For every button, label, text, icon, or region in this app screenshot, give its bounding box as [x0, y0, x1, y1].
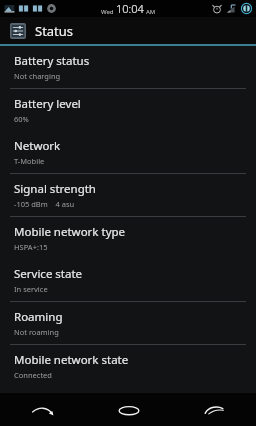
staticText: HSPA+:15 [14, 242, 48, 252]
staticText: T-Mobile [14, 156, 45, 166]
staticText: Roaming [14, 309, 63, 325]
staticText: Battery level [14, 96, 81, 112]
staticText: Network [14, 138, 61, 154]
button[interactable]: Battery status [0, 46, 256, 88]
staticText: Status [35, 22, 74, 40]
staticText: Signal strength [14, 181, 96, 197]
button[interactable]: Recent apps [171, 393, 256, 426]
staticText: Wed [101, 8, 114, 16]
other: Battery 60 percent [241, 3, 252, 14]
staticText: -105 dBm 4 asu [14, 199, 75, 209]
staticText: Mobile network state [14, 352, 129, 368]
button[interactable]: Roaming [0, 302, 256, 344]
button[interactable]: Signal strength [0, 174, 256, 216]
button[interactable]: Back [0, 393, 86, 426]
staticText: Not charging [14, 71, 61, 81]
button[interactable]: Mobile network type [0, 217, 256, 259]
staticText: 10:04 [116, 1, 144, 16]
staticText: Not roaming [14, 327, 59, 337]
button[interactable]: Service state [0, 259, 256, 301]
staticText: AM [146, 8, 156, 16]
button[interactable]: Battery level [0, 89, 256, 131]
other: Mobile signal [226, 4, 237, 14]
button[interactable]: Mobile network state [0, 345, 256, 387]
staticText: Mobile network type [14, 224, 126, 240]
staticText: Battery status [14, 53, 90, 69]
button[interactable]: Network [0, 131, 256, 173]
staticText: In service [14, 284, 48, 294]
button[interactable]: Home [86, 393, 171, 426]
staticText: Connected [14, 370, 52, 380]
staticText: 60% [14, 114, 29, 124]
staticText: Service state [14, 266, 83, 282]
other: Alarm set [212, 4, 222, 14]
